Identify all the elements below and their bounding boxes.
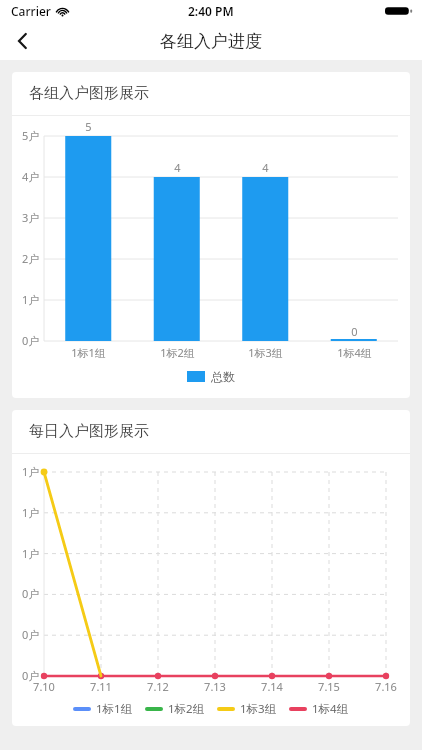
staticText: 4	[262, 160, 269, 175]
staticText: 0户	[22, 333, 40, 348]
staticText: 1标2组	[168, 701, 205, 717]
staticText: 2:40 PM	[188, 3, 234, 19]
button[interactable]: Back	[0, 22, 46, 60]
staticText: 2户	[22, 251, 40, 266]
staticText: 0户	[22, 586, 40, 601]
button[interactable]: 每日入户图形展示	[12, 410, 410, 726]
staticText: 1标1组	[96, 701, 133, 717]
staticText: 1户	[22, 505, 40, 520]
staticText: 每日入户图形展示	[29, 422, 149, 441]
staticText: 0户	[22, 627, 40, 642]
staticText: 各组入户进度	[160, 31, 262, 52]
staticText: 1标1组	[71, 345, 106, 360]
staticText: 1户	[22, 546, 40, 561]
staticText: 5	[85, 119, 92, 134]
staticText: 1标3组	[248, 345, 283, 360]
staticText: 总数	[211, 369, 235, 384]
staticText: 1标4组	[312, 701, 349, 717]
staticText: 各组入户图形展示	[29, 84, 149, 103]
staticText: 1标4组	[337, 345, 372, 360]
staticText: 1户	[22, 464, 40, 479]
staticText: 4	[174, 160, 181, 175]
staticText: 7.15	[318, 679, 340, 694]
staticText: 7.10	[33, 679, 55, 694]
staticText: 0	[351, 324, 358, 339]
staticText: 1户	[22, 292, 40, 307]
staticText: 7.12	[147, 679, 169, 694]
staticText: 5户	[22, 128, 40, 143]
staticText: 7.13	[204, 679, 226, 694]
staticText: Carrier	[11, 3, 51, 19]
staticText: 1标3组	[240, 701, 277, 717]
button[interactable]: 各组入户图形展示	[12, 72, 410, 398]
staticText: 4户	[22, 169, 40, 184]
staticText: 7.11	[90, 679, 112, 694]
staticText: 7.14	[261, 679, 283, 694]
staticText: 7.16	[375, 679, 397, 694]
staticText: 0户	[22, 668, 40, 683]
staticText: 1标2组	[160, 345, 195, 360]
staticText: 3户	[22, 210, 40, 225]
